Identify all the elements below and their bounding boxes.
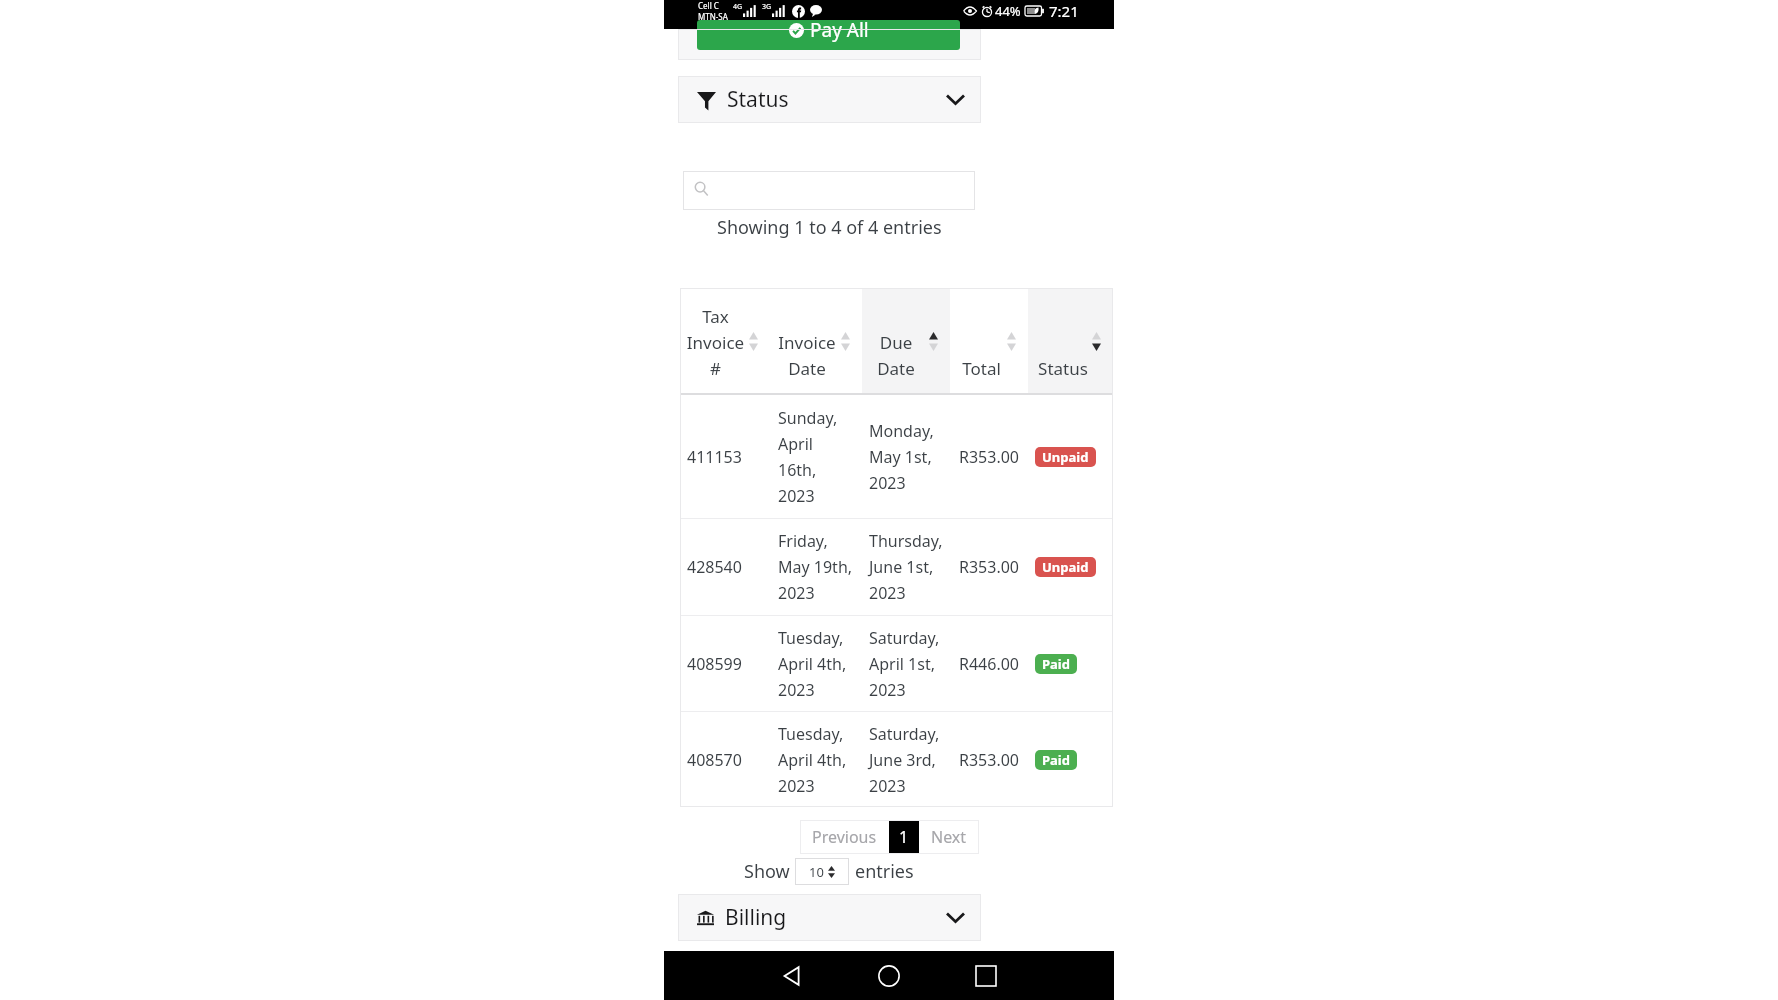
button[interactable]: Invoice Date xyxy=(770,288,862,393)
staticText: Unpaid xyxy=(1042,448,1089,466)
staticText: Next xyxy=(931,826,967,848)
staticText: Status xyxy=(1038,357,1088,380)
staticText: 7:21 xyxy=(1049,1,1079,21)
staticText: R353.00 xyxy=(954,556,1024,578)
button[interactable]: Recents xyxy=(963,953,1009,999)
button[interactable]: 408599 xyxy=(680,616,1113,711)
staticText: Tuesday, April 4th, 2023 xyxy=(778,723,855,797)
staticText: Due Date xyxy=(866,331,926,380)
staticText: Showing 1 to 4 of 4 entries xyxy=(717,215,942,240)
staticText: R446.00 xyxy=(954,653,1024,675)
button[interactable]: Due Date xyxy=(862,288,950,393)
button[interactable]: Status xyxy=(1028,288,1113,393)
staticText: Monday, May 1st, 2023 xyxy=(869,420,946,494)
button[interactable]: Search xyxy=(683,171,975,210)
button[interactable]: Home xyxy=(866,953,912,999)
staticText: Show xyxy=(744,859,790,884)
staticText: entries xyxy=(855,859,914,884)
button[interactable]: 411153 xyxy=(680,395,1113,518)
staticText: Sunday, April 16th, 2023 xyxy=(778,407,855,507)
staticText: Invoice Date xyxy=(776,331,838,380)
staticText: Friday, May 19th, 2023 xyxy=(778,530,855,604)
staticText: Status xyxy=(727,85,789,114)
staticText: 3G xyxy=(762,2,772,12)
staticText: Tax Invoice # xyxy=(683,305,748,380)
button[interactable]: Pay All xyxy=(697,20,960,50)
button[interactable]: Billing xyxy=(678,894,981,941)
staticText: Unpaid xyxy=(1042,558,1089,576)
button[interactable]: Total xyxy=(950,288,1028,393)
staticText: 411153 xyxy=(687,446,766,468)
staticText: Paid xyxy=(1042,751,1070,769)
staticText: Tuesday, April 4th, 2023 xyxy=(778,627,855,701)
staticText: Previous xyxy=(812,826,877,848)
button[interactable]: Back xyxy=(769,953,815,999)
staticText: MTN-SA xyxy=(698,11,728,22)
button[interactable]: Status xyxy=(678,76,981,123)
staticText: 408570 xyxy=(687,749,766,771)
staticText: R353.00 xyxy=(954,749,1024,771)
staticText: 10 xyxy=(809,863,824,881)
button[interactable]: 428540 xyxy=(680,519,1113,615)
staticText: Billing xyxy=(725,903,787,932)
button[interactable]: Next xyxy=(919,820,979,854)
button[interactable]: 408570 xyxy=(680,712,1113,807)
button[interactable]: Tax Invoice # xyxy=(680,288,770,393)
staticText: Saturday, June 3rd, 2023 xyxy=(869,723,946,797)
button[interactable]: 10 xyxy=(795,858,849,885)
staticText: Cell C xyxy=(698,0,719,11)
staticText: 408599 xyxy=(687,653,766,675)
staticText: 44% xyxy=(995,2,1021,20)
button[interactable]: Previous xyxy=(800,820,889,854)
staticText: 1 xyxy=(899,826,909,848)
staticText: R353.00 xyxy=(954,446,1024,468)
staticText: Thursday, June 1st, 2023 xyxy=(869,530,946,604)
staticText: Total xyxy=(962,357,1001,380)
button[interactable]: 1 xyxy=(889,820,919,854)
staticText: Paid xyxy=(1042,655,1070,673)
staticText: Pay All xyxy=(810,20,869,43)
staticText: Saturday, April 1st, 2023 xyxy=(869,627,946,701)
staticText: 4G xyxy=(733,2,743,12)
staticText: 428540 xyxy=(687,556,766,578)
